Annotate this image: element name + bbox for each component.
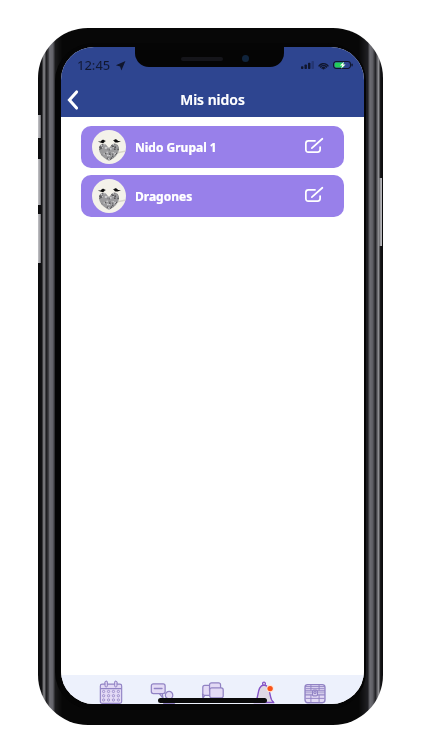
button[interactable]: Treasure: [300, 675, 330, 704]
button[interactable]: Edit: [302, 130, 337, 164]
button[interactable]: Chats: [198, 675, 228, 704]
staticText: Dragones: [135, 188, 193, 204]
staticText: 12:45: [77, 56, 111, 74]
button[interactable]: Nido Grupal 1: [81, 126, 344, 168]
button[interactable]: Back: [61, 83, 85, 116]
button[interactable]: Dragones: [81, 175, 344, 217]
button[interactable]: Edit: [302, 179, 337, 213]
button[interactable]: Calendar: [96, 675, 126, 704]
button[interactable]: Notifications: [249, 675, 279, 704]
staticText: Mis nidos: [180, 90, 245, 109]
button[interactable]: Messages: [147, 675, 177, 704]
staticText: Nido Grupal 1: [135, 139, 217, 155]
